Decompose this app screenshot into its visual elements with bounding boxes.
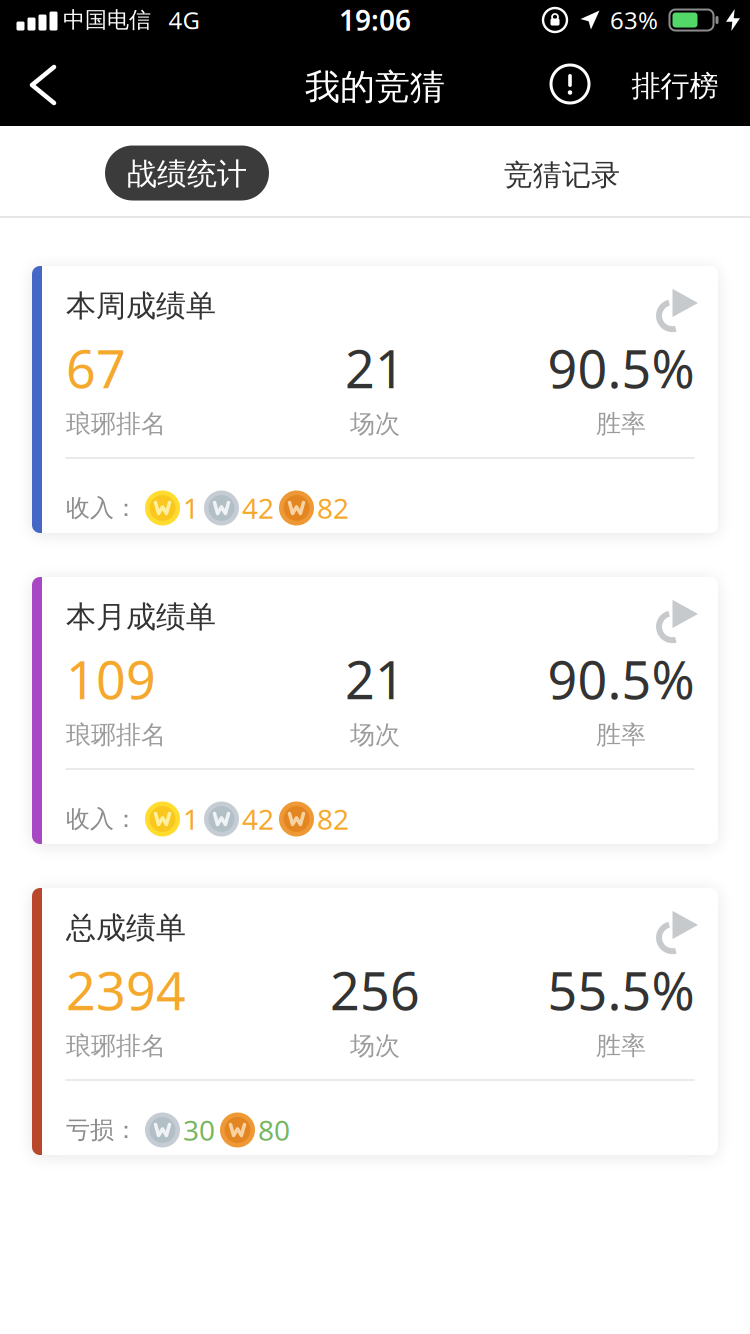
staticText: 42 bbox=[242, 800, 274, 838]
staticText: 21 bbox=[345, 333, 405, 403]
staticText: 琅琊排名 bbox=[66, 1030, 166, 1062]
staticText: 胜率 bbox=[596, 408, 646, 440]
staticText: 中国电信 bbox=[63, 6, 151, 34]
staticText: 我的竞猜 bbox=[305, 65, 445, 109]
button[interactable]: Back bbox=[18, 53, 68, 117]
staticText: 胜率 bbox=[596, 719, 646, 751]
staticText: 场次 bbox=[350, 408, 400, 440]
staticText: 256 bbox=[330, 955, 420, 1025]
staticText: 67 bbox=[66, 333, 126, 403]
staticText: 场次 bbox=[350, 1030, 400, 1062]
button[interactable]: 排行榜 bbox=[631, 68, 718, 104]
staticText: 战绩统计 bbox=[127, 155, 247, 193]
staticText: 19:06 bbox=[339, 1, 411, 39]
staticText: 场次 bbox=[350, 719, 400, 751]
button[interactable]: 竞猜记录 bbox=[494, 147, 630, 203]
staticText: 竞猜记录 bbox=[504, 157, 620, 193]
staticText: 90.5% bbox=[547, 644, 694, 714]
button[interactable]: Share bbox=[648, 908, 702, 956]
staticText: 总成绩单 bbox=[66, 909, 186, 947]
staticText: 琅琊排名 bbox=[66, 719, 166, 751]
staticText: 82 bbox=[317, 800, 349, 838]
staticText: 收入： bbox=[66, 804, 138, 834]
staticText: 4G bbox=[168, 4, 199, 36]
staticText: 琅琊排名 bbox=[66, 408, 166, 440]
staticText: 109 bbox=[66, 644, 156, 714]
staticText: 本月成绩单 bbox=[66, 598, 216, 636]
button[interactable]: Share bbox=[648, 597, 702, 645]
staticText: 55.5% bbox=[547, 955, 694, 1025]
staticText: 收入： bbox=[66, 493, 138, 523]
staticText: 本周成绩单 bbox=[66, 287, 216, 325]
staticText: 90.5% bbox=[547, 333, 694, 403]
staticText: 1 bbox=[183, 800, 199, 838]
staticText: 80 bbox=[258, 1111, 290, 1149]
button[interactable]: Share bbox=[648, 286, 702, 334]
staticText: 30 bbox=[183, 1111, 215, 1149]
staticText: 82 bbox=[317, 489, 349, 527]
staticText: 2394 bbox=[66, 955, 186, 1025]
staticText: 63% bbox=[610, 4, 658, 36]
staticText: 21 bbox=[345, 644, 405, 714]
button[interactable]: Info bbox=[548, 62, 592, 106]
staticText: 胜率 bbox=[596, 1030, 646, 1062]
staticText: 亏损： bbox=[66, 1115, 138, 1145]
staticText: 排行榜 bbox=[631, 68, 718, 104]
staticText: 1 bbox=[183, 489, 199, 527]
button[interactable]: 战绩统计 bbox=[105, 145, 269, 200]
staticText: 42 bbox=[242, 489, 274, 527]
